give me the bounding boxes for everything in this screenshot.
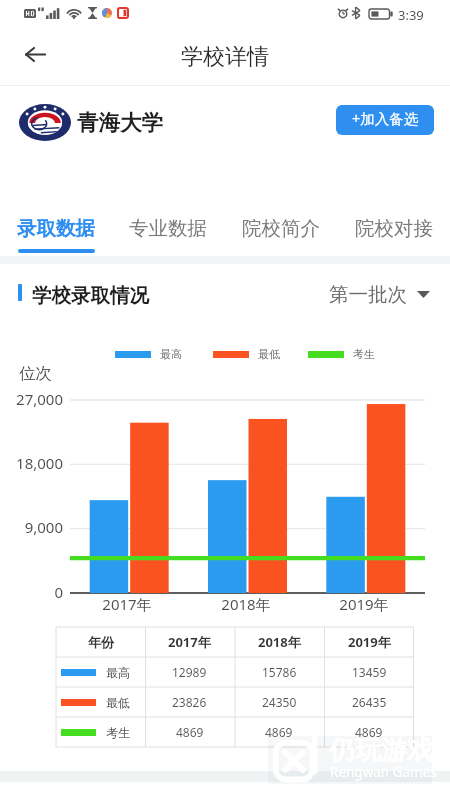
staticText: 0: [0, 582, 63, 602]
staticText: 2017年: [92, 594, 162, 614]
button[interactable]: 专业数据: [112, 200, 224, 256]
staticText: 最低: [258, 347, 280, 361]
staticText: 最高: [160, 347, 182, 361]
staticText: 学校录取情况: [32, 283, 149, 308]
staticText: 2018年: [258, 633, 301, 651]
staticText: 15786: [262, 664, 297, 680]
staticText: +加入备选: [352, 108, 419, 128]
staticText: 院校对接: [355, 216, 433, 241]
button[interactable]: 第一批次: [325, 278, 434, 311]
staticText: 学校详情: [181, 43, 269, 71]
staticText: 4869: [265, 724, 293, 740]
staticText: 27,000: [0, 389, 63, 409]
staticText: 录取数据: [17, 216, 95, 241]
staticText: 最高: [106, 665, 130, 680]
staticText: 位次: [19, 363, 52, 384]
staticText: 12989: [172, 664, 207, 680]
staticText: 仍玩游戏: [329, 734, 433, 767]
staticText: 年份: [88, 634, 114, 650]
button[interactable]: 录取数据: [0, 200, 112, 256]
staticText: 第一批次: [329, 282, 407, 307]
staticText: 24350: [262, 694, 297, 710]
button[interactable]: Back: [15, 34, 55, 74]
staticText: 2017年: [168, 633, 211, 651]
staticText: 9,000: [0, 517, 63, 537]
staticText: 院校简介: [242, 216, 320, 241]
staticText: 考生: [353, 347, 375, 361]
staticText: 26435: [352, 694, 387, 710]
staticText: Rengwan Games: [330, 763, 437, 781]
staticText: 2019年: [329, 594, 399, 614]
staticText: 3:39: [398, 6, 424, 24]
staticText: 青海大学: [77, 109, 163, 136]
staticText: 13459: [352, 664, 387, 680]
button[interactable]: 院校对接: [337, 200, 450, 256]
staticText: 最低: [106, 695, 130, 710]
staticText: 考生: [106, 725, 130, 740]
staticText: 18,000: [0, 453, 63, 473]
button[interactable]: 院校简介: [224, 200, 337, 256]
staticText: 4869: [355, 724, 383, 740]
staticText: 专业数据: [129, 216, 207, 241]
staticText: 2019年: [348, 633, 391, 651]
staticText: 4869: [176, 724, 204, 740]
button[interactable]: +加入备选: [336, 105, 434, 135]
staticText: 2018年: [211, 594, 281, 614]
staticText: 23826: [172, 694, 207, 710]
